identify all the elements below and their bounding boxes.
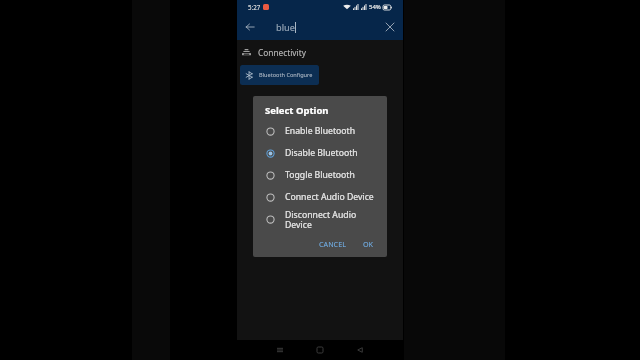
button[interactable]: Clear search xyxy=(377,14,403,40)
staticText: Toggle Bluetooth xyxy=(285,169,355,181)
staticText: blue xyxy=(276,21,295,34)
staticText: Enable Bluetooth xyxy=(285,125,356,137)
button[interactable]: Disconnect Audio Device xyxy=(253,208,387,230)
staticText: CANCEL xyxy=(319,239,346,249)
button[interactable]: CANCEL xyxy=(315,236,350,252)
staticText: Bluetooth Configure xyxy=(259,71,313,79)
button[interactable]: Toggle Bluetooth xyxy=(253,164,387,186)
staticText: 54% xyxy=(369,3,381,11)
button[interactable]: Enable Bluetooth xyxy=(253,120,387,142)
staticText: 5:27 xyxy=(248,3,261,11)
button[interactable]: Bluetooth Configure xyxy=(240,65,319,85)
staticText: Disconnect Audio Device xyxy=(285,209,379,230)
button[interactable]: Connect Audio Device xyxy=(253,186,387,208)
button[interactable]: Back xyxy=(237,14,263,40)
button[interactable]: Back xyxy=(353,343,367,357)
button[interactable]: Recent apps xyxy=(273,343,287,357)
staticText: Disable Bluetooth xyxy=(285,147,358,159)
staticText: Connectivity xyxy=(258,47,306,58)
button[interactable]: Disable Bluetooth xyxy=(253,142,387,164)
staticText: Select Option xyxy=(265,104,329,117)
staticText: Connect Audio Device xyxy=(285,191,374,203)
button[interactable]: OK xyxy=(359,236,378,252)
staticText: OK xyxy=(363,239,374,249)
button[interactable]: Home xyxy=(313,343,327,357)
